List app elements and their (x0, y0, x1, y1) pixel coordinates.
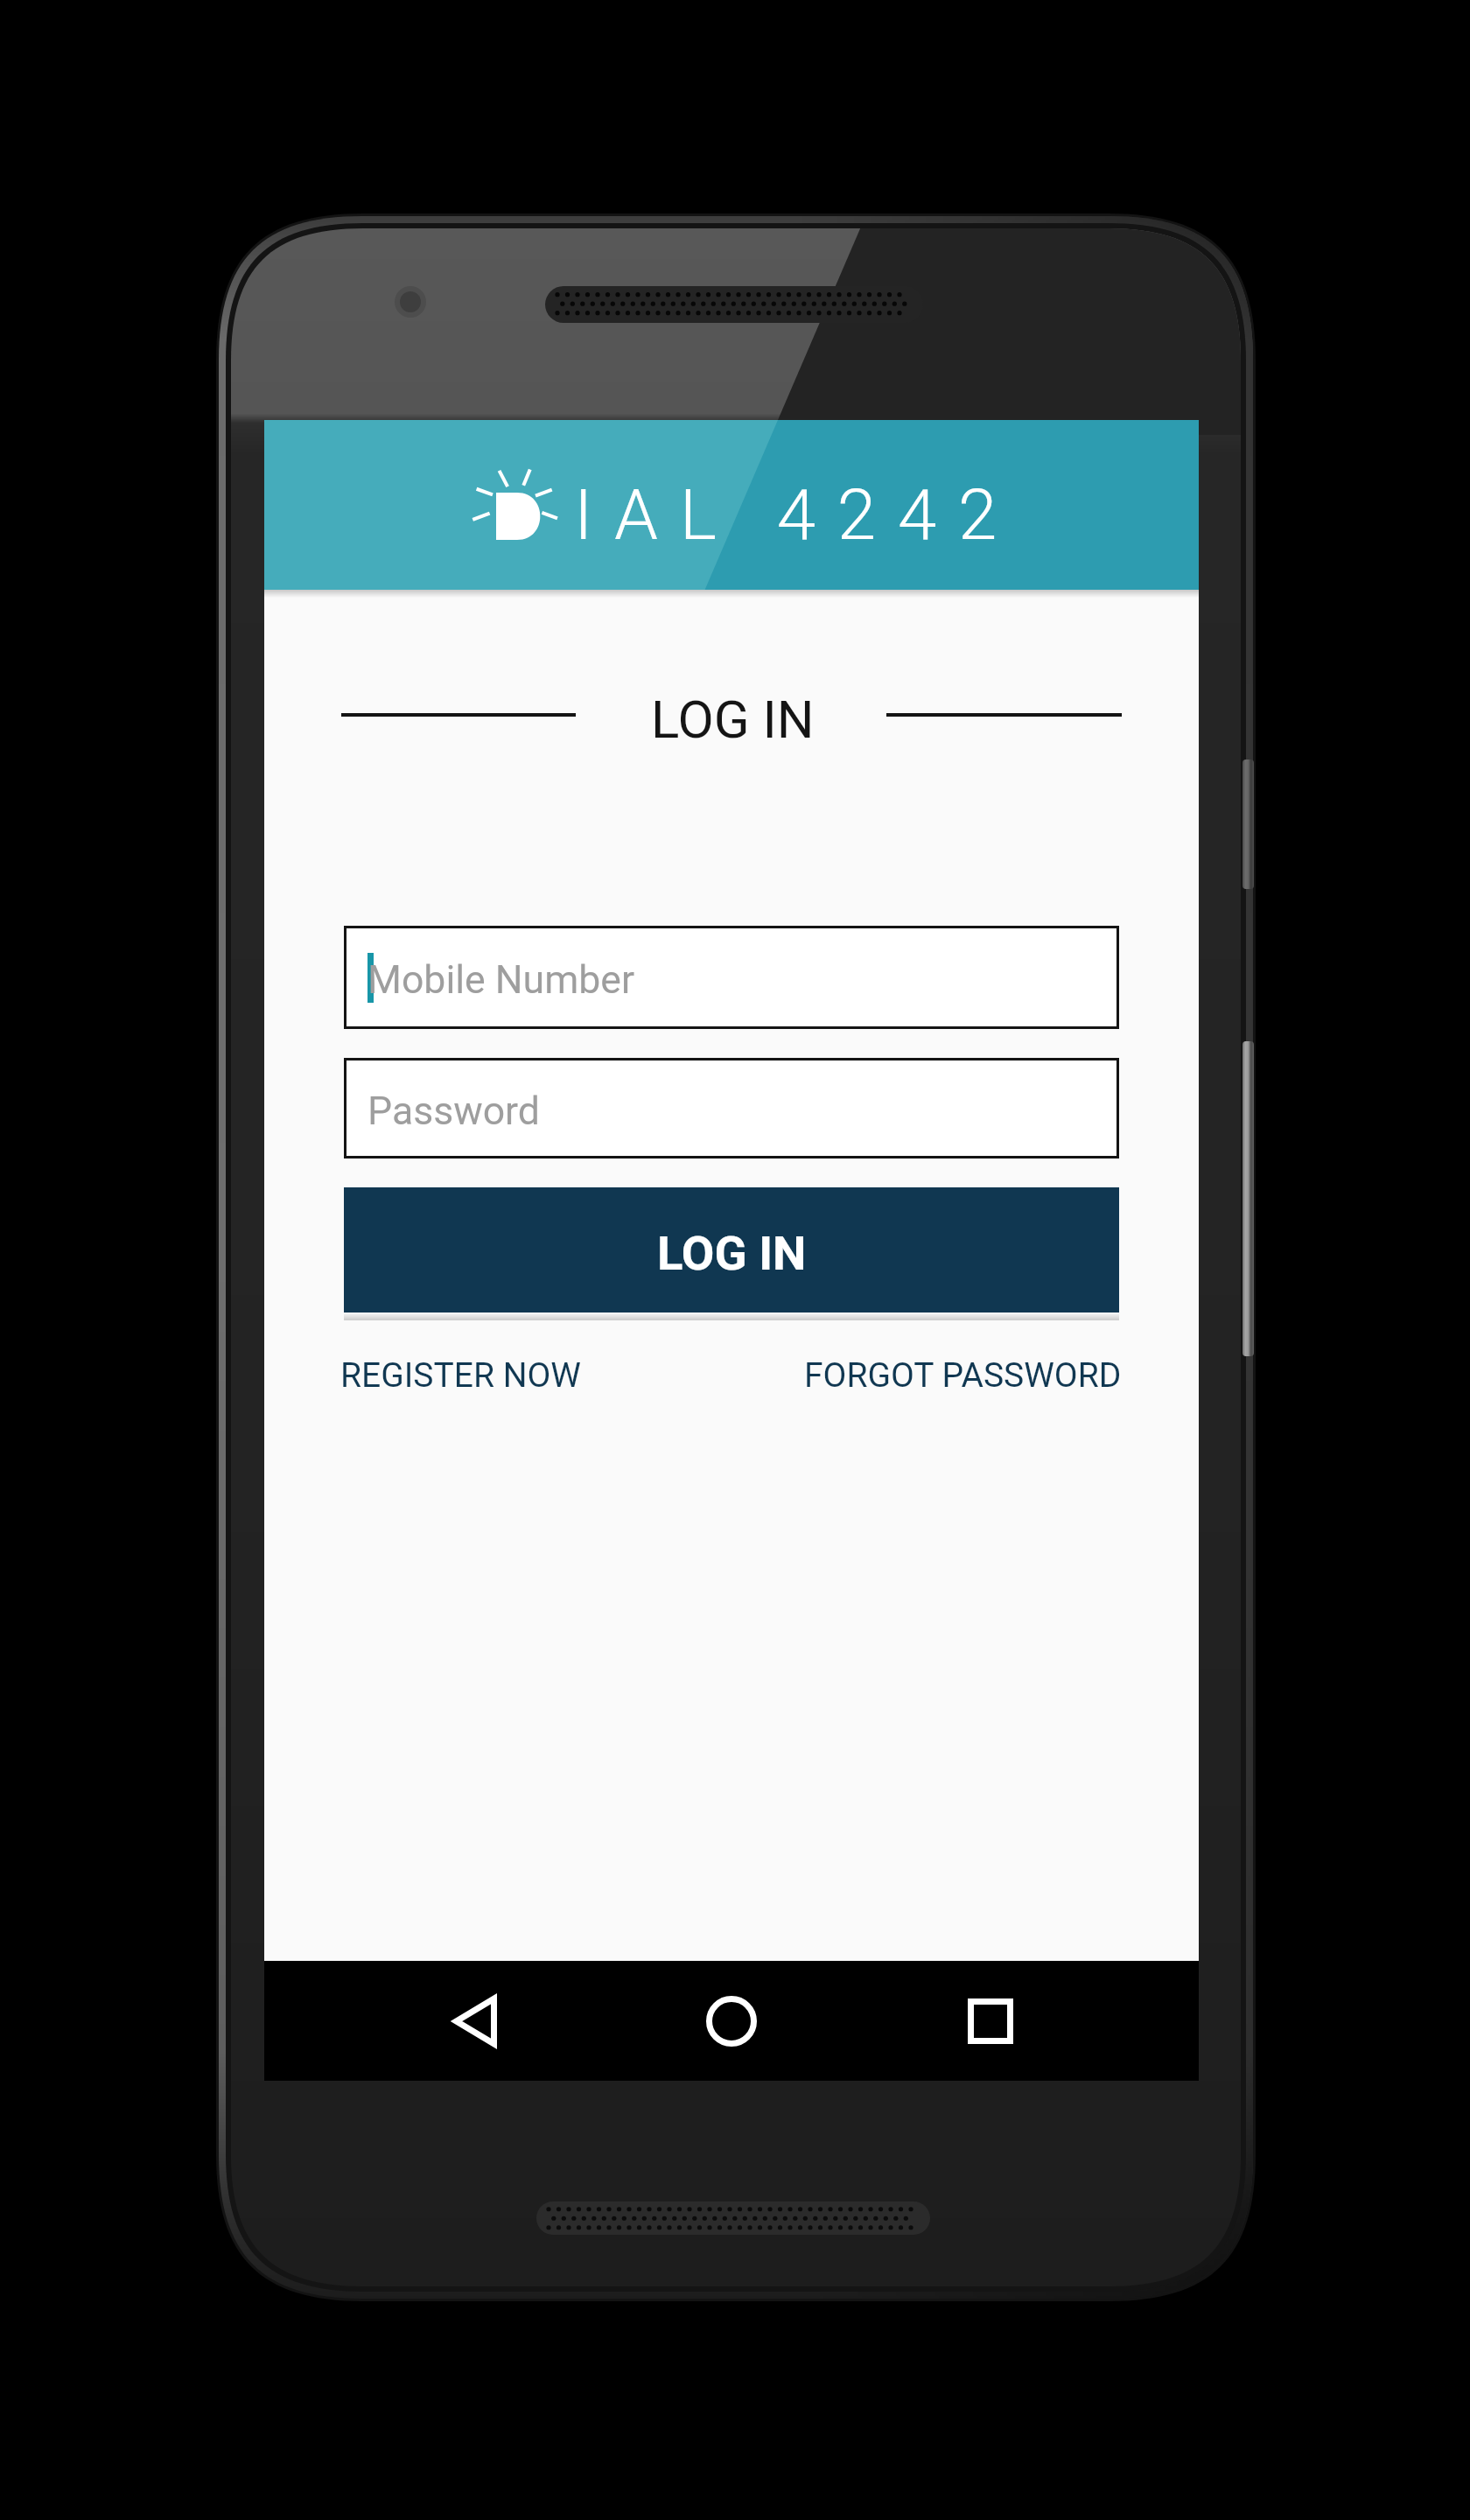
staticText: LOG IN (657, 1225, 807, 1281)
staticText: Password (367, 1088, 540, 1134)
staticText: Mobile Number (367, 957, 635, 1003)
staticText: I A L 4 2 4 2 (574, 474, 999, 556)
staticText: FORGOT PASSWORD (804, 1355, 1122, 1396)
staticText: REGISTER NOW (340, 1355, 581, 1396)
button[interactable]: LOG IN (344, 1187, 1119, 1312)
button[interactable]: FORGOT PASSWORD (804, 1355, 1122, 1396)
button[interactable]: Back (388, 1961, 563, 2081)
button[interactable]: Mobile Number (344, 926, 1119, 1029)
button[interactable]: Password (344, 1058, 1119, 1158)
button[interactable]: Home (644, 1961, 819, 2081)
button[interactable]: REGISTER NOW (340, 1355, 581, 1396)
staticText: LOG IN (651, 689, 815, 750)
button[interactable]: Recents (903, 1961, 1078, 2081)
